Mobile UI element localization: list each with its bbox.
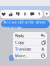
- button[interactable]: React: [14, 10, 21, 18]
- staticText: Are we still on for dinner tomorrow: [3, 19, 46, 30]
- button[interactable]: More…: [13, 52, 47, 59]
- staticText: Reply: [15, 33, 24, 38]
- button[interactable]: Reply: [13, 32, 47, 39]
- button[interactable]: React: [7, 10, 14, 18]
- button[interactable]: Translate: [13, 46, 47, 52]
- button[interactable]: React: [36, 10, 43, 18]
- button[interactable]: React: [0, 10, 7, 18]
- button[interactable]: React: [21, 10, 29, 18]
- staticText: Copy: [15, 39, 24, 45]
- button[interactable]: More reactions: [44, 11, 50, 17]
- staticText: Translate: [15, 46, 31, 51]
- staticText: night at seven?: [3, 31, 28, 36]
- staticText: More…: [15, 53, 28, 58]
- button[interactable]: Copy: [13, 39, 47, 45]
- button[interactable]: React: [29, 10, 36, 18]
- staticText: A: [41, 46, 44, 51]
